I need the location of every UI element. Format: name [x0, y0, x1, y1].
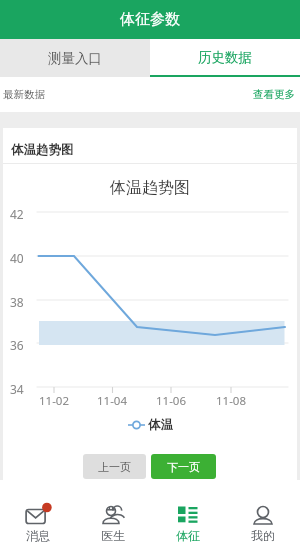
staticText: 体温趋势图 [11, 142, 74, 158]
button[interactable]: 历史数据 [150, 39, 300, 77]
button[interactable]: 消息 [0, 480, 75, 550]
staticText: 42 [10, 206, 24, 222]
staticText: 测量入口 [48, 50, 102, 67]
staticText: 体征 [176, 528, 200, 543]
button[interactable]: 体征 [150, 480, 225, 550]
staticText: 38 [10, 294, 24, 310]
staticText: 体温 [148, 417, 173, 433]
staticText: 最新数据 [3, 88, 45, 101]
staticText: 医生 [101, 528, 125, 543]
button[interactable]: 下一页 [151, 454, 216, 479]
button[interactable]: 上一页 [83, 454, 146, 479]
staticText: 11-06 [156, 393, 187, 409]
button[interactable]: 我的 [225, 480, 300, 550]
staticText: 体征参数 [120, 10, 180, 29]
button[interactable]: 医生 [75, 480, 150, 550]
staticText: 上一页 [98, 460, 131, 474]
staticText: 40 [10, 250, 24, 266]
button[interactable]: 查看更多 [253, 88, 295, 101]
staticText: 体温趋势图 [110, 178, 190, 198]
staticText: 历史数据 [198, 49, 252, 66]
staticText: 下一页 [167, 460, 200, 474]
staticText: 11-04 [97, 393, 128, 409]
staticText: 查看更多 [253, 88, 295, 101]
staticText: 11-08 [216, 393, 247, 409]
staticText: 我的 [251, 528, 275, 543]
button[interactable]: 测量入口 [0, 39, 150, 77]
staticText: 36 [10, 337, 24, 353]
staticText: 34 [10, 381, 24, 397]
staticText: 11-02 [39, 393, 70, 409]
staticText: 消息 [26, 528, 50, 543]
